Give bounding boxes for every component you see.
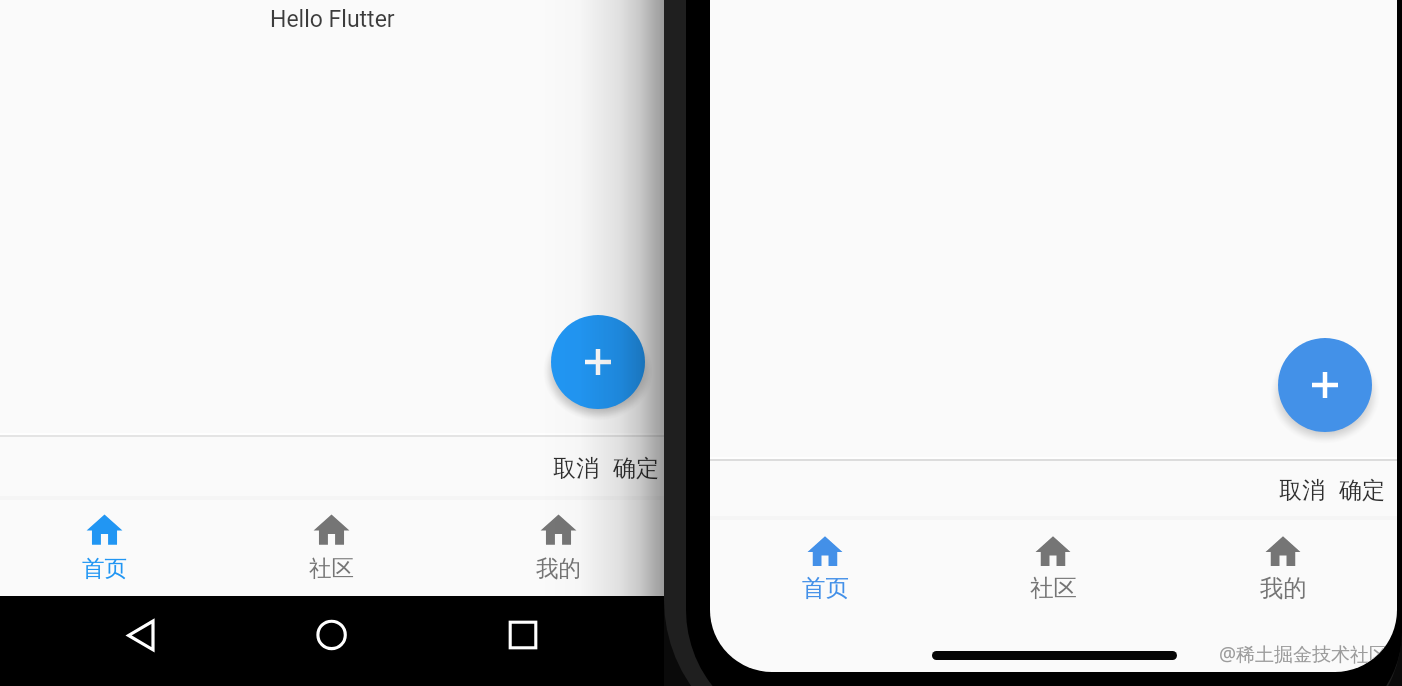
button[interactable]: 首页 (711, 519, 939, 614)
button[interactable]: Add (551, 315, 645, 409)
staticText: 我的 (536, 554, 581, 582)
staticText: 取消 (1279, 476, 1325, 505)
button[interactable]: 社区 (218, 498, 445, 596)
staticText: 确定 (613, 454, 659, 483)
staticText: 社区 (309, 554, 354, 582)
staticText: 我的 (1260, 573, 1307, 603)
staticText: 取消 (553, 454, 599, 483)
staticText: @稀土掘金技术社区 (1219, 641, 1389, 667)
button[interactable]: 社区 (939, 519, 1167, 614)
staticText: 首页 (82, 554, 127, 582)
button[interactable]: 取消 (553, 454, 661, 486)
button[interactable]: 我的 (445, 498, 672, 596)
button[interactable]: 首页 (0, 498, 218, 596)
button[interactable]: 取消 (1279, 476, 1387, 508)
staticText: Hello Flutter (270, 6, 395, 33)
staticText: 社区 (1030, 573, 1077, 603)
button[interactable]: 我的 (1169, 519, 1397, 614)
staticText: 确定 (1339, 476, 1385, 505)
button[interactable]: Add (1278, 338, 1372, 432)
staticText: 首页 (802, 573, 849, 603)
